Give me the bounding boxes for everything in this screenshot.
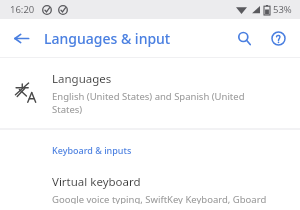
button[interactable]: Search <box>230 24 258 52</box>
button[interactable]: Back <box>6 23 36 53</box>
button[interactable]: Help <box>264 24 292 52</box>
staticText: Keyboard & inputs <box>52 144 132 156</box>
button[interactable]: Virtual keyboard <box>0 172 300 210</box>
staticText: Languages <box>52 71 112 87</box>
staticText: English (United States) and Spanish (Uni… <box>52 90 245 116</box>
staticText: 16:20 <box>10 3 35 16</box>
staticText: Languages & input <box>44 29 171 48</box>
staticText: 53% <box>273 3 292 16</box>
staticText: Virtual keyboard <box>52 174 141 190</box>
staticText: Google voice typing, SwiftKey Keyboard, … <box>52 193 267 204</box>
button[interactable]: Languages <box>0 58 300 128</box>
